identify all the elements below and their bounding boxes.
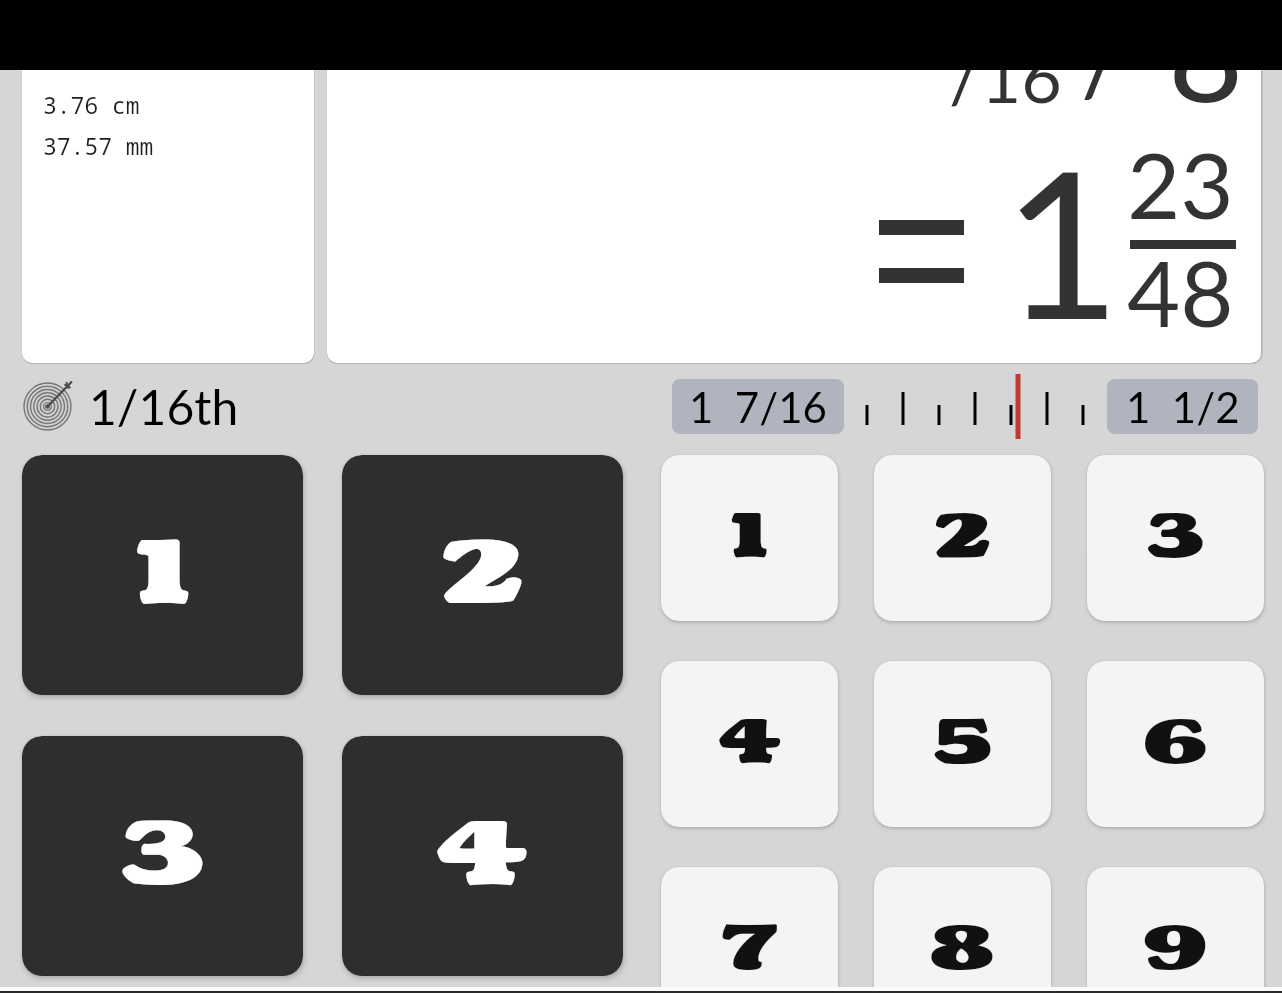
staticText: 3.76 cm bbox=[43, 89, 140, 120]
staticText: 48 bbox=[1127, 236, 1234, 346]
button[interactable]: /16 bbox=[327, 58, 1261, 363]
staticText: 1 1/2 bbox=[1126, 382, 1240, 432]
button[interactable]: 1 bbox=[661, 455, 838, 621]
button[interactable]: 3.76 cm bbox=[22, 58, 314, 363]
staticText: 6 bbox=[1142, 703, 1209, 786]
button[interactable]: 3 bbox=[22, 736, 303, 976]
button[interactable]: 1 1/2 bbox=[1107, 379, 1258, 434]
staticText: /16 bbox=[949, 58, 1062, 118]
staticText: 2 bbox=[934, 497, 992, 580]
staticText: 1/16th bbox=[89, 378, 239, 434]
staticText: 9 bbox=[1143, 909, 1208, 992]
staticText: 1 7/16 bbox=[689, 382, 827, 432]
staticText: 5 bbox=[933, 703, 993, 786]
button[interactable]: 2 bbox=[874, 455, 1051, 621]
button[interactable]: 3 bbox=[1087, 455, 1264, 621]
staticText: 23 bbox=[1127, 128, 1234, 238]
staticText: 4 bbox=[717, 703, 782, 786]
staticText: 37.57 mm bbox=[43, 130, 154, 161]
staticText: 3 bbox=[120, 796, 206, 917]
staticText: 1 bbox=[136, 515, 190, 636]
staticText: 2 bbox=[441, 515, 523, 636]
staticText: 8 bbox=[1168, 58, 1244, 130]
button[interactable]: 2 bbox=[342, 455, 623, 695]
staticText: 1 bbox=[1003, 119, 1121, 363]
other: Ruler bbox=[844, 370, 1107, 445]
button[interactable]: 5 bbox=[874, 661, 1051, 827]
button[interactable]: Rounding precision bbox=[24, 378, 324, 434]
button[interactable]: 4 bbox=[342, 736, 623, 976]
staticText: 3 bbox=[1146, 497, 1205, 580]
button[interactable]: 8 bbox=[874, 867, 1051, 993]
staticText: 7 bbox=[721, 909, 779, 992]
button[interactable]: 7 bbox=[661, 867, 838, 993]
button[interactable]: 1 7/16 bbox=[672, 379, 844, 434]
staticText: 4 bbox=[435, 796, 530, 917]
button[interactable]: 4 bbox=[661, 661, 838, 827]
other: Rounding precision bbox=[24, 383, 71, 430]
staticText: 1 bbox=[731, 497, 768, 580]
staticText: / bbox=[1081, 58, 1125, 115]
button[interactable]: 6 bbox=[1087, 661, 1264, 827]
button[interactable]: 1 bbox=[22, 455, 303, 695]
staticText: 8 bbox=[929, 909, 996, 992]
button[interactable]: 9 bbox=[1087, 867, 1264, 993]
